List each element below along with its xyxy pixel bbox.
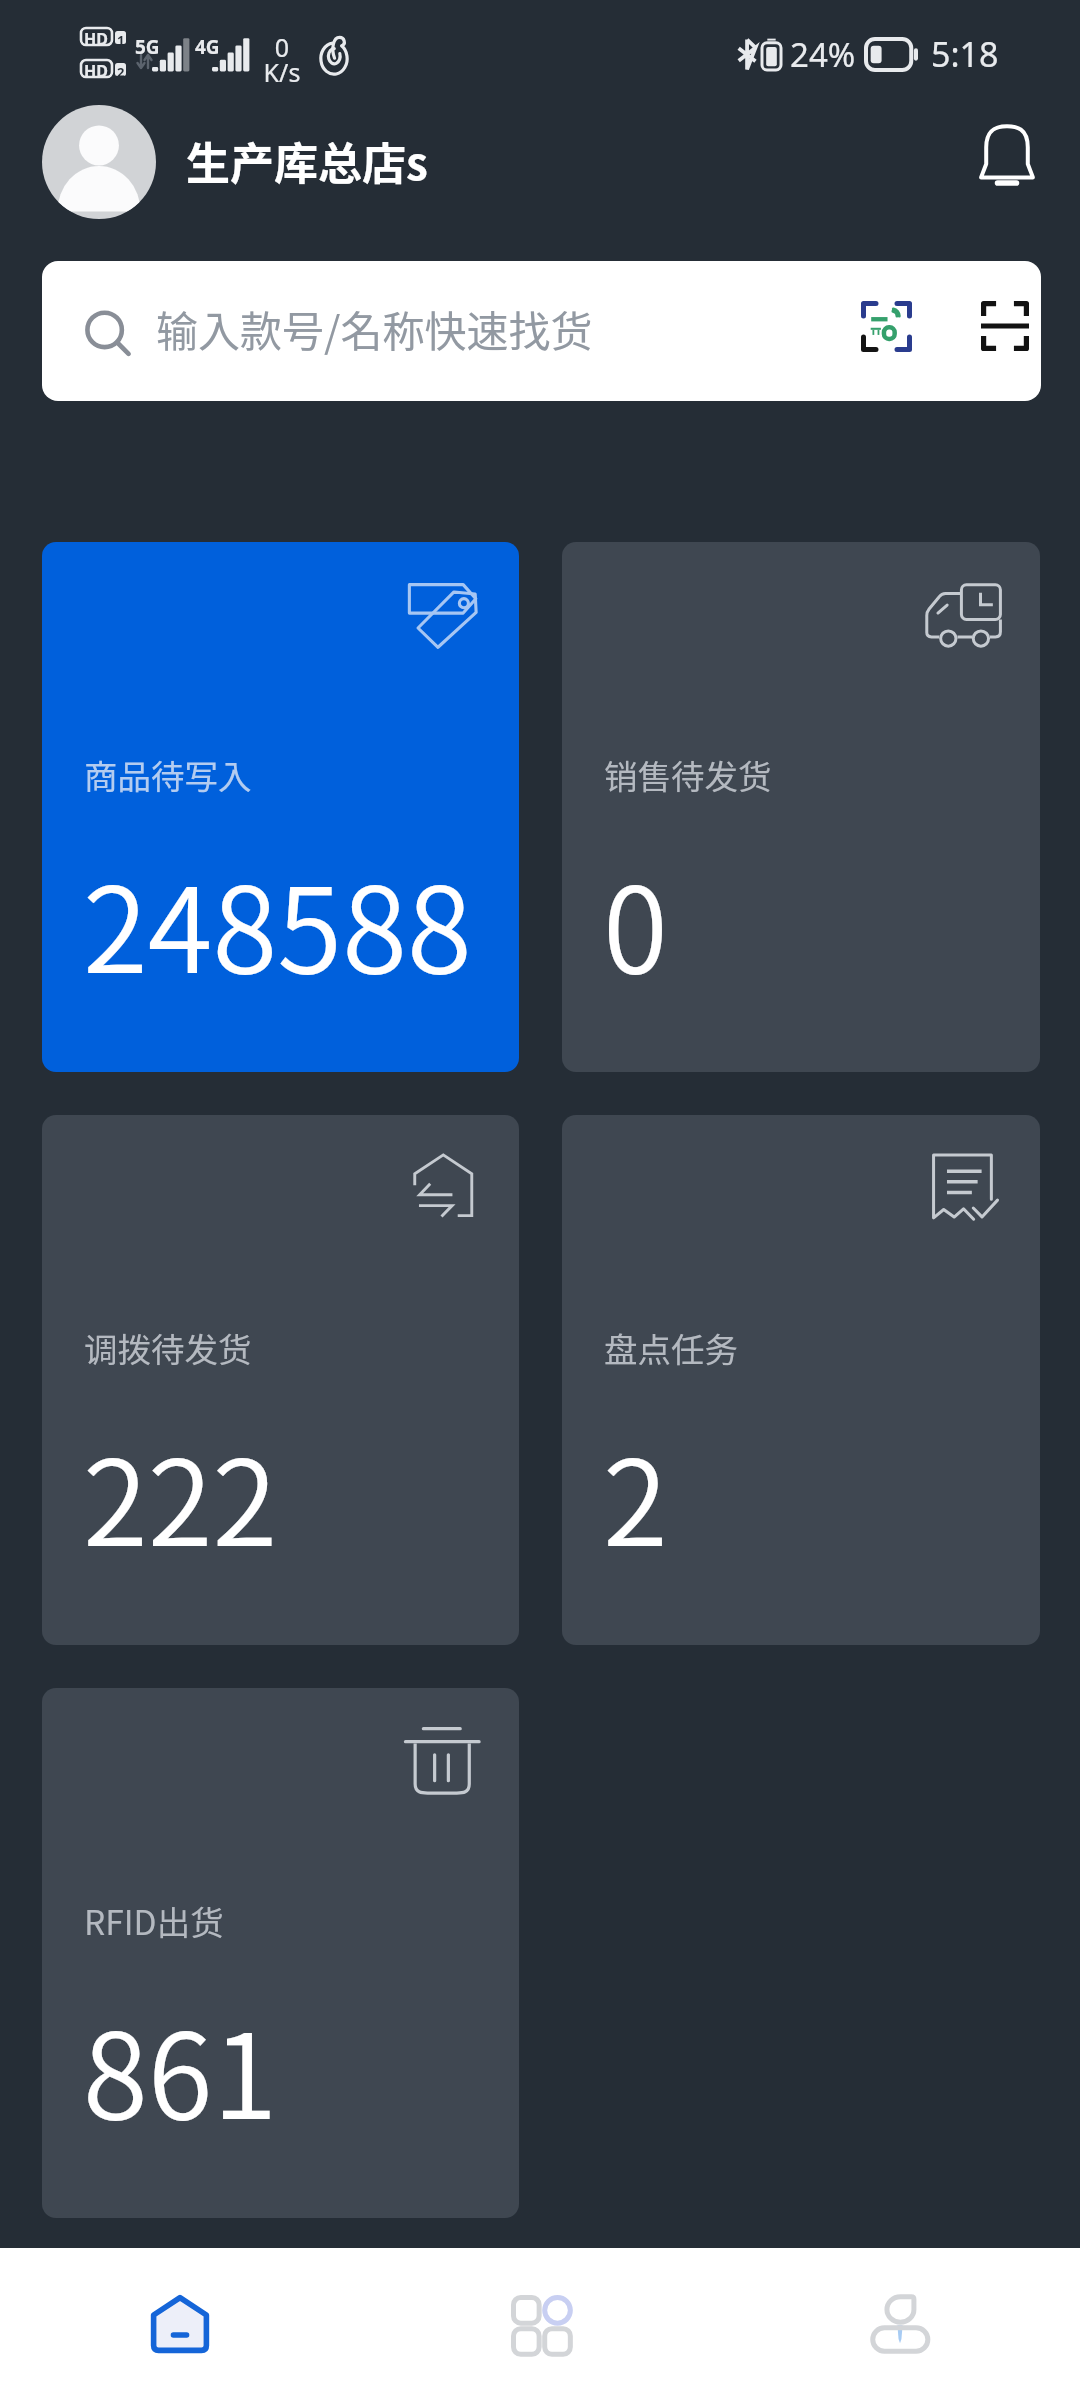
staticText: 5G [135, 34, 160, 60]
staticText: 输入款号/名称快速找货 [156, 298, 593, 359]
staticText: 1 [117, 31, 125, 49]
staticText: 0 K/s [258, 30, 306, 90]
staticText: HD [84, 28, 108, 50]
button[interactable]: Home [0, 2248, 360, 2400]
button[interactable]: 商品待写入 [42, 542, 519, 1072]
staticText: 2 [117, 63, 125, 81]
staticText: 222 [83, 1409, 278, 1580]
staticText: 4G [195, 34, 220, 60]
staticText: RFID出货 [84, 1896, 224, 1945]
button[interactable]: 盘点任务 [562, 1115, 1040, 1645]
staticText: 商品待写入 [84, 750, 252, 799]
staticText: 248588 [83, 836, 472, 1007]
staticText: 销售待发货 [604, 750, 772, 799]
staticText: 盘点任务 [604, 1323, 738, 1372]
button[interactable]: 调拨待发货 [42, 1115, 519, 1645]
button[interactable]: 销售待发货 [562, 542, 1040, 1072]
staticText: 0 [603, 836, 668, 1007]
button[interactable]: 输入款号/名称快速找货 [42, 261, 1041, 401]
button[interactable]: Apps [360, 2248, 720, 2400]
staticText: 2 [603, 1409, 668, 1580]
staticText: 24% [790, 32, 856, 77]
staticText: HD [84, 60, 108, 82]
button[interactable]: Notifications [965, 114, 1049, 198]
staticText: 861 [83, 1982, 278, 2153]
staticText: 调拨待发货 [84, 1323, 252, 1372]
button[interactable]: RFID scan [842, 282, 930, 370]
button[interactable]: RFID出货 [42, 1688, 519, 2218]
staticText: 生产库总店s [186, 129, 428, 193]
button[interactable]: Scan barcode [961, 282, 1041, 370]
button[interactable]: Profile [720, 2248, 1080, 2400]
staticText: 5:18 [931, 31, 999, 77]
button[interactable]: Profile [42, 105, 156, 219]
